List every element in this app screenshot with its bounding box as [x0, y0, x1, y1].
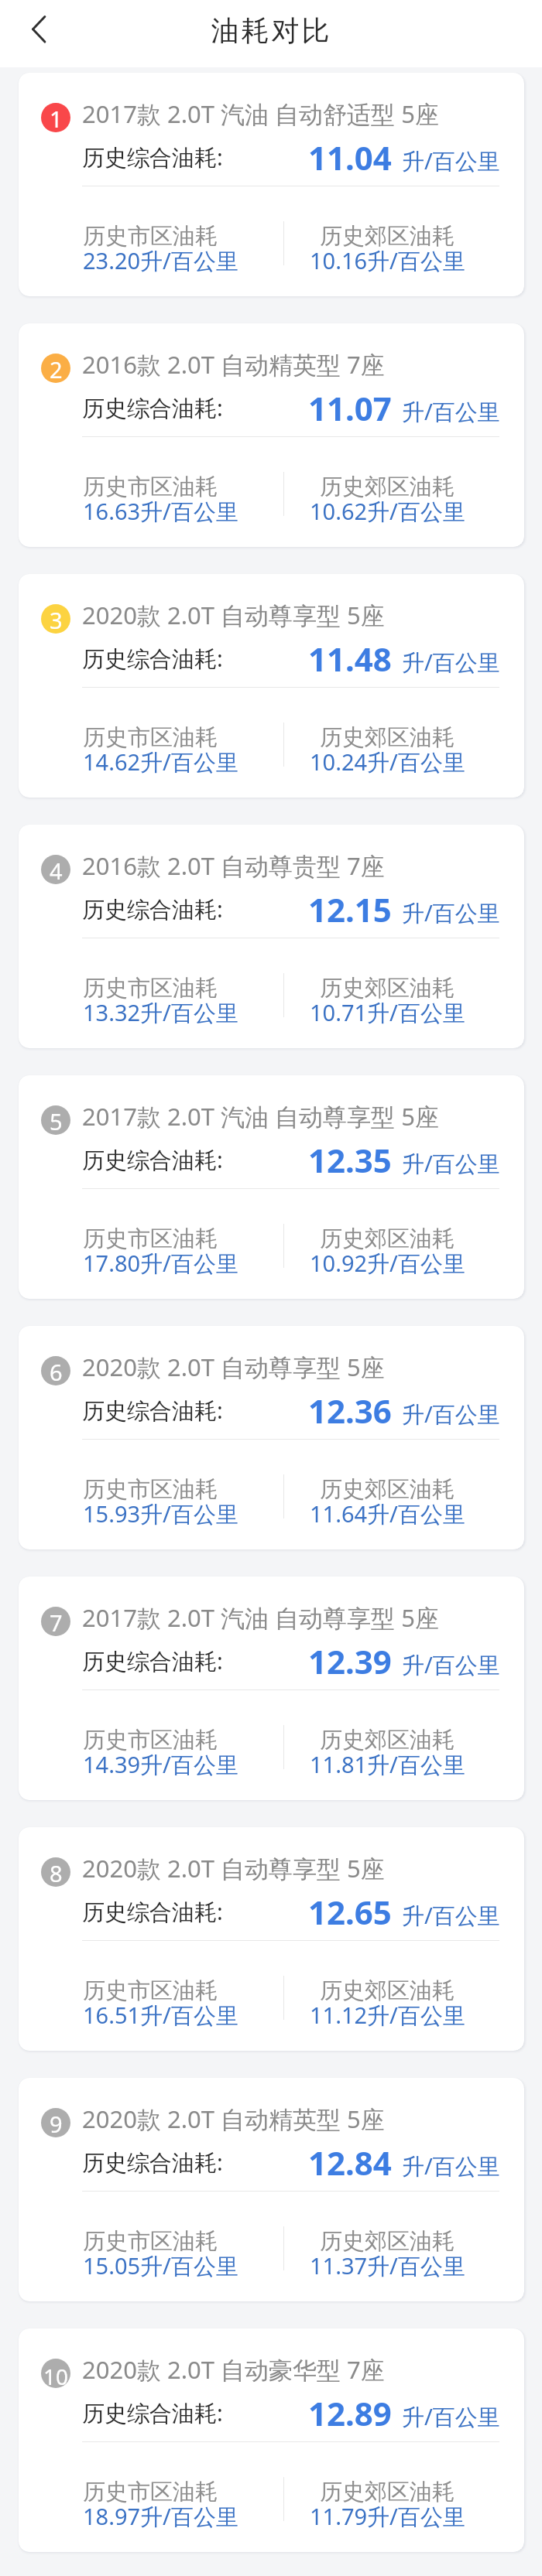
staticText: 11.79升/百公里	[310, 2501, 465, 2532]
staticText: 历史郊区油耗	[320, 222, 455, 251]
button[interactable]: 5	[19, 1075, 524, 1299]
staticText: 历史市区油耗	[83, 1475, 218, 1504]
staticText: 11.07	[308, 386, 392, 430]
staticText: 15.93升/百公里	[83, 1498, 238, 1529]
staticText: 升/百公里	[402, 1649, 500, 1680]
staticText: 10.24升/百公里	[310, 746, 465, 777]
staticText: 15.05升/百公里	[83, 2250, 238, 2281]
staticText: 油耗对比	[210, 13, 331, 48]
staticText: 2020款 2.0T 自动尊享型 5座	[82, 599, 385, 631]
staticText: 12.35	[308, 1138, 392, 1182]
staticText: 10	[43, 2362, 69, 2388]
staticText: 升/百公里	[402, 647, 500, 678]
staticText: 2016款 2.0T 自动尊贵型 7座	[82, 849, 385, 882]
staticText: 升/百公里	[402, 897, 500, 928]
staticText: 12.36	[308, 1389, 392, 1433]
staticText: 18.97升/百公里	[83, 2501, 238, 2532]
staticText: 13.32升/百公里	[83, 997, 238, 1028]
button[interactable]: 8	[19, 1827, 524, 2051]
staticText: 历史综合油耗:	[82, 1896, 223, 1927]
staticText: 12.15	[308, 887, 392, 931]
staticText: 11.37升/百公里	[310, 2250, 465, 2281]
button[interactable]: 10	[19, 2328, 524, 2552]
staticText: 历史郊区油耗	[320, 723, 455, 752]
staticText: 11.64升/百公里	[310, 1498, 465, 1529]
staticText: 1	[50, 104, 63, 132]
staticText: 历史综合油耗:	[82, 2397, 223, 2428]
staticText: 6	[50, 1357, 63, 1385]
staticText: 历史郊区油耗	[320, 1726, 455, 1754]
staticText: 历史综合油耗:	[82, 392, 223, 423]
staticText: 历史综合油耗:	[82, 2147, 223, 2178]
staticText: 3	[50, 605, 63, 634]
staticText: 11.04	[308, 135, 392, 179]
staticText: 历史郊区油耗	[320, 1225, 455, 1253]
staticText: 11.12升/百公里	[310, 2000, 465, 2031]
staticText: 历史综合油耗:	[82, 1395, 223, 1426]
staticText: 12.89	[308, 2391, 392, 2435]
staticText: 2020款 2.0T 自动尊享型 5座	[82, 1351, 385, 1383]
staticText: 历史综合油耗:	[82, 1645, 223, 1676]
staticText: 2017款 2.0T 汽油 自动尊享型 5座	[82, 1100, 439, 1133]
staticText: 历史市区油耗	[83, 222, 218, 251]
staticText: 历史市区油耗	[83, 473, 218, 501]
staticText: 升/百公里	[402, 145, 500, 176]
staticText: 14.39升/百公里	[83, 1749, 238, 1780]
staticText: 2020款 2.0T 自动精英型 5座	[82, 2103, 385, 2135]
staticText: 4	[50, 856, 63, 884]
staticText: 历史郊区油耗	[320, 2227, 455, 2256]
staticText: 8	[50, 1858, 63, 1887]
staticText: 升/百公里	[402, 396, 500, 427]
staticText: 16.63升/百公里	[83, 496, 238, 527]
staticText: 历史郊区油耗	[320, 974, 455, 1003]
staticText: 升/百公里	[402, 2401, 500, 2432]
button[interactable]: 7	[19, 1577, 524, 1800]
staticText: 历史综合油耗:	[82, 142, 223, 173]
staticText: 历史郊区油耗	[320, 1475, 455, 1504]
staticText: 2017款 2.0T 汽油 自动舒适型 5座	[82, 97, 439, 130]
staticText: 9	[50, 2109, 63, 2137]
staticText: 升/百公里	[402, 2151, 500, 2181]
staticText: 14.62升/百公里	[83, 746, 238, 777]
staticText: 10.92升/百公里	[310, 1248, 465, 1279]
staticText: 历史郊区油耗	[320, 473, 455, 501]
staticText: 23.20升/百公里	[83, 245, 238, 276]
staticText: 16.51升/百公里	[83, 2000, 238, 2031]
staticText: 2020款 2.0T 自动尊享型 5座	[82, 1852, 385, 1884]
button[interactable]: 9	[19, 2078, 524, 2301]
staticText: 历史市区油耗	[83, 2227, 218, 2256]
staticText: 升/百公里	[402, 1900, 500, 1931]
staticText: 历史市区油耗	[83, 1976, 218, 2005]
staticText: 历史市区油耗	[83, 1726, 218, 1754]
staticText: 10.71升/百公里	[310, 997, 465, 1028]
staticText: 历史郊区油耗	[320, 2478, 455, 2506]
button[interactable]: Back	[0, 5, 59, 63]
button[interactable]: 3	[19, 574, 524, 798]
staticText: 12.65	[308, 1890, 392, 1934]
staticText: 升/百公里	[402, 1148, 500, 1179]
staticText: 历史综合油耗:	[82, 893, 223, 924]
staticText: 历史综合油耗:	[82, 1144, 223, 1175]
staticText: 7	[50, 1607, 63, 1636]
staticText: 17.80升/百公里	[83, 1248, 238, 1279]
staticText: 历史郊区油耗	[320, 1976, 455, 2005]
button[interactable]: 1	[19, 73, 524, 296]
staticText: 12.84	[308, 2140, 392, 2185]
staticText: 升/百公里	[402, 1399, 500, 1430]
staticText: 10.16升/百公里	[310, 245, 465, 276]
staticText: 11.81升/百公里	[310, 1749, 465, 1780]
staticText: 10.62升/百公里	[310, 496, 465, 527]
staticText: 2	[50, 354, 63, 383]
button[interactable]: 4	[19, 825, 524, 1048]
staticText: 历史市区油耗	[83, 723, 218, 752]
button[interactable]: 2	[19, 323, 524, 547]
staticText: 历史综合油耗:	[82, 643, 223, 674]
staticText: 12.39	[308, 1639, 392, 1683]
staticText: 5	[50, 1106, 63, 1135]
staticText: 历史市区油耗	[83, 1225, 218, 1253]
staticText: 11.48	[308, 637, 392, 681]
staticText: 历史市区油耗	[83, 2478, 218, 2506]
button[interactable]: 6	[19, 1326, 524, 1549]
staticText: 2016款 2.0T 自动精英型 7座	[82, 348, 385, 381]
staticText: 历史市区油耗	[83, 974, 218, 1003]
